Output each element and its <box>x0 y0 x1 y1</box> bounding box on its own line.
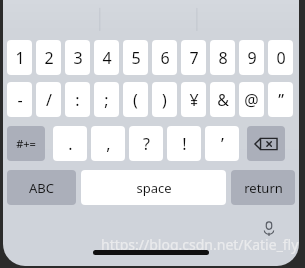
staticText: ’ <box>221 133 224 155</box>
staticText: , <box>106 133 111 155</box>
button[interactable]: Dictation microphone <box>256 216 282 242</box>
staticText: : <box>75 89 80 111</box>
staticText: ( <box>133 89 138 111</box>
button[interactable]: ABC <box>7 170 76 205</box>
button[interactable]: ; <box>94 82 119 117</box>
button[interactable]: : <box>65 82 90 117</box>
button[interactable]: ? <box>129 126 163 161</box>
staticText: ; <box>104 89 109 111</box>
button[interactable]: 4 <box>94 40 119 75</box>
staticText: 6 <box>160 47 170 69</box>
staticText: ” <box>278 89 284 111</box>
staticText: @ <box>244 89 259 111</box>
button[interactable]: #+= <box>7 126 45 161</box>
button[interactable]: 0 <box>268 40 293 75</box>
staticText: 9 <box>247 47 257 69</box>
button[interactable]: 9 <box>239 40 264 75</box>
button[interactable]: @ <box>239 82 264 117</box>
staticText: ABC <box>29 179 54 197</box>
staticText: ) <box>162 89 167 111</box>
button[interactable]: , <box>91 126 125 161</box>
button[interactable]: ! <box>167 126 201 161</box>
staticText: space <box>136 179 172 197</box>
staticText: 5 <box>131 47 141 69</box>
staticText: / <box>46 89 52 111</box>
button[interactable]: Delete <box>247 126 285 161</box>
staticText: ? <box>143 133 150 155</box>
staticText: . <box>68 133 73 155</box>
staticText: 2 <box>44 47 54 69</box>
button[interactable]: 7 <box>181 40 206 75</box>
button[interactable]: ¥ <box>181 82 206 117</box>
button[interactable]: & <box>210 82 235 117</box>
button[interactable]: 2 <box>36 40 61 75</box>
button[interactable]: 1 <box>7 40 32 75</box>
staticText: - <box>17 89 23 111</box>
staticText: 8 <box>218 47 228 69</box>
button[interactable]: 6 <box>152 40 177 75</box>
button[interactable]: ) <box>152 82 177 117</box>
staticText: ¥ <box>189 89 199 111</box>
staticText: ! <box>182 133 187 155</box>
button[interactable]: - <box>7 82 32 117</box>
staticText: 4 <box>102 47 112 69</box>
button[interactable]: . <box>53 126 87 161</box>
staticText: 1 <box>15 47 25 69</box>
button[interactable]: 5 <box>123 40 148 75</box>
button[interactable]: ( <box>123 82 148 117</box>
button[interactable]: 3 <box>65 40 90 75</box>
button[interactable]: / <box>36 82 61 117</box>
staticText: https://blog.csdn.net/Katie_fly <box>101 235 299 254</box>
button[interactable]: 8 <box>210 40 235 75</box>
button[interactable]: space <box>81 170 226 205</box>
button[interactable]: ’ <box>205 126 239 161</box>
staticText: 3 <box>73 47 83 69</box>
staticText: 7 <box>189 47 199 69</box>
button[interactable]: ” <box>268 82 293 117</box>
staticText: return <box>244 179 283 197</box>
staticText: 0 <box>276 47 286 69</box>
staticText: #+= <box>16 136 36 151</box>
staticText: & <box>217 89 229 111</box>
button[interactable]: return <box>231 170 295 205</box>
